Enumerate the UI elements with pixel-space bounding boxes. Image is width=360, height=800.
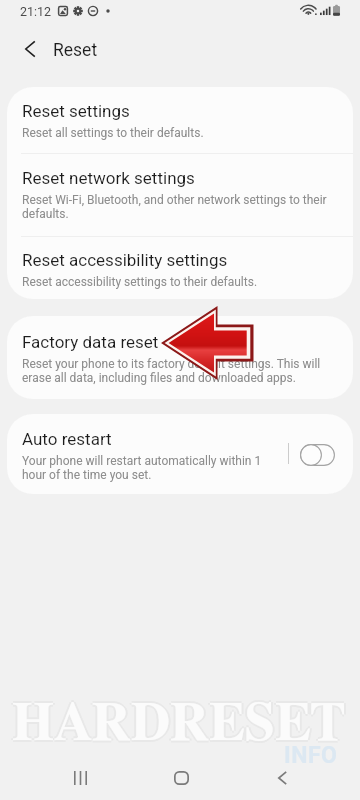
button[interactable]: Factory data reset (7, 332, 353, 399)
button[interactable]: Auto restart (7, 429, 353, 494)
button[interactable]: Navigate up (15, 34, 45, 64)
staticText: erase all data, including files and down… (22, 371, 296, 385)
staticText: defaults. (22, 207, 69, 221)
button[interactable]: Auto restart toggle (281, 437, 343, 471)
staticText: Reset accessibility settings (22, 250, 228, 270)
staticText: Reset Wi-Fi, Bluetooth, and other networ… (22, 193, 327, 207)
staticText: HARDRESET (12, 697, 346, 751)
button[interactable]: Reset accessibility settings (7, 250, 353, 299)
staticText: Reset network settings (22, 168, 195, 188)
staticText: Reset your phone to its factory default … (22, 357, 321, 371)
staticText: Reset settings (22, 101, 130, 121)
staticText: Auto restart (22, 429, 112, 449)
staticText: 21:12 (20, 4, 52, 19)
staticText: Reset accessibility settings to their de… (22, 275, 258, 289)
staticText: Your phone will restart automatically wi… (22, 454, 262, 468)
staticText: INFO (284, 742, 338, 769)
staticText: HARDRESET (12, 699, 346, 753)
staticText: Factory data reset (22, 332, 159, 352)
staticText: HARDRESET (12, 695, 346, 749)
staticText: HARDRESET (14, 697, 348, 751)
button[interactable]: Recent apps (58, 756, 102, 800)
button[interactable]: Home (159, 756, 203, 800)
staticText: Reset all settings to their defaults. (22, 126, 204, 140)
staticText: Reset (53, 40, 98, 61)
button[interactable]: Back (260, 756, 304, 800)
staticText: HARDRESET (10, 697, 344, 751)
button[interactable]: Reset settings (7, 101, 353, 152)
button[interactable]: Reset network settings (7, 168, 353, 235)
staticText: hour of the time you set. (22, 468, 152, 482)
